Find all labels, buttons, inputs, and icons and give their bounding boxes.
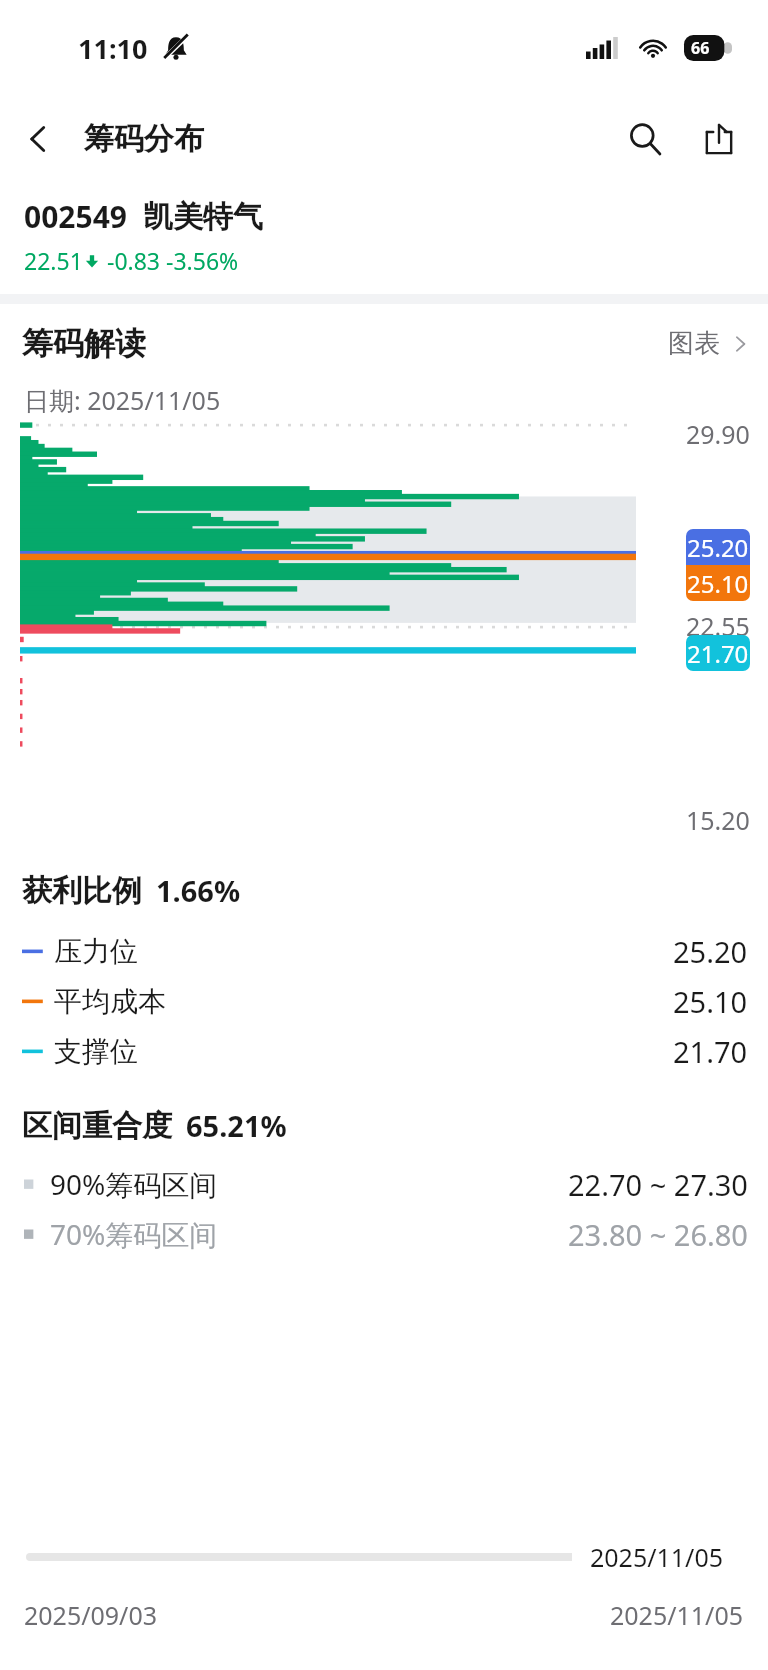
staticText: 15.20 [686,803,750,837]
button[interactable]: 图表 [668,327,750,360]
staticText: 25.10 [687,567,749,600]
button[interactable]: 70%筹码区间 [22,1209,748,1259]
staticText: 90%筹码区间 [50,1165,218,1203]
staticText: 图表 [668,327,720,360]
button[interactable]: 90%筹码区间 [22,1159,748,1209]
button[interactable]: 2025/11/05 [572,1530,742,1584]
staticText: 2025/09/03 [24,1598,158,1632]
staticText: 002549 [24,196,127,237]
staticText: 22.70 ~ 27.30 [568,1165,748,1204]
staticText: 凯美特气 [143,198,263,236]
button[interactable]: 支撑位 [22,1026,748,1076]
staticText: 65.21% [186,1106,287,1145]
staticText: 日期: 2025/11/05 [24,383,221,417]
staticText: 2025/11/05 [610,1598,744,1632]
button[interactable]: 平均成本 [22,976,748,1026]
staticText: 1.66% [156,871,241,910]
button[interactable]: 压力位 [22,926,748,976]
button[interactable]: Share [688,108,750,170]
staticText: 压力位 [54,934,138,969]
staticText: 筹码分布 [84,120,204,158]
staticText: 70%筹码区间 [50,1215,218,1253]
staticText: 21.70 [687,637,749,670]
staticText: 筹码解读 [22,324,146,363]
staticText: 平均成本 [54,984,166,1019]
staticText: 22.51 [24,245,83,276]
staticText: 25.10 [673,982,748,1021]
staticText: 支撑位 [54,1034,138,1069]
button[interactable]: Search [614,108,676,170]
staticText: 获利比例 [22,872,142,910]
staticText: 区间重合度 [22,1107,172,1145]
staticText: 25.20 [673,932,748,971]
staticText: 22.55 [686,609,750,643]
staticText: 2025/11/05 [590,1540,724,1574]
staticText: 66 [691,37,710,59]
staticText: -0.83 -3.56% [101,245,239,276]
staticText: 25.20 [687,531,749,564]
staticText: 21.70 [673,1032,748,1071]
button[interactable]: Back [10,111,66,167]
staticText: 11:10 [78,30,148,67]
staticText: 29.90 [686,417,750,451]
staticText: 23.80 ~ 26.80 [568,1215,748,1254]
